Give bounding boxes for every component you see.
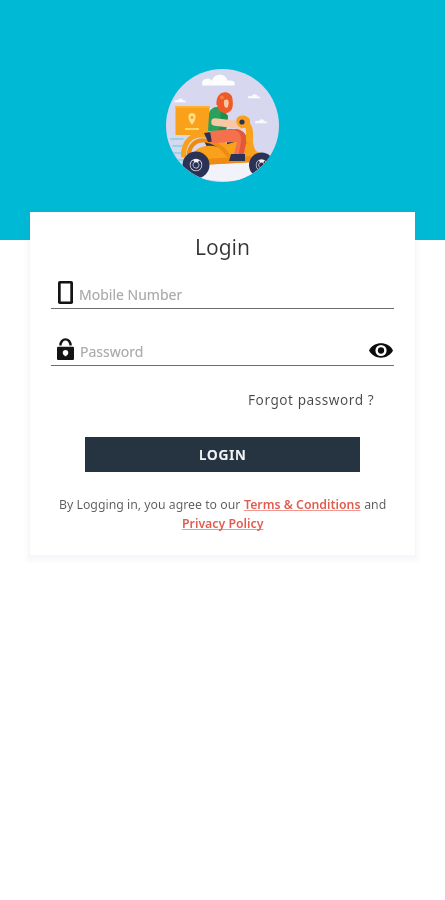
staticText: LOGIN <box>199 446 247 464</box>
staticText: and <box>361 496 387 513</box>
staticText: Mobile Number <box>79 285 183 304</box>
button[interactable]: Privacy Policy <box>182 515 264 532</box>
staticText: Login <box>30 233 415 262</box>
button[interactable]: Show password <box>364 336 398 364</box>
staticText: Password <box>80 342 144 361</box>
button[interactable]: Terms & Conditions <box>244 496 361 513</box>
staticText: By Logging in, you agree to our <box>59 496 244 513</box>
button[interactable]: LOGIN <box>85 437 360 472</box>
button[interactable]: Forgot password ? <box>248 390 375 409</box>
